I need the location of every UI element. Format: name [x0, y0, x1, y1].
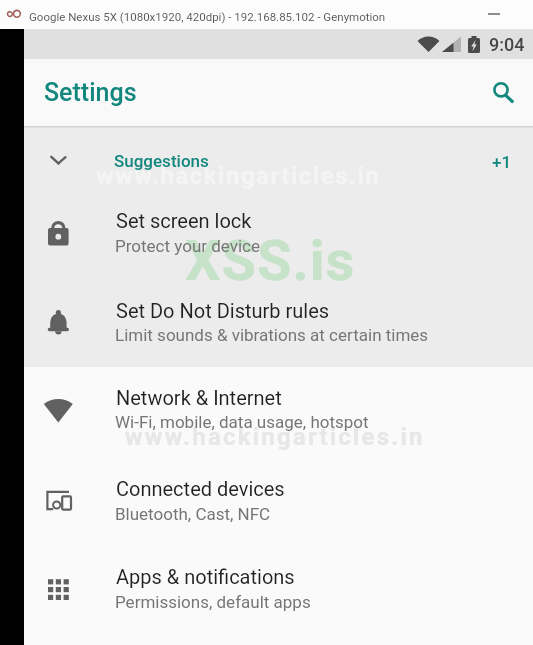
staticText: Limit sounds & vibrations at certain tim…	[115, 325, 429, 345]
staticText: www.hackingarticles.in	[96, 162, 381, 190]
staticText: Bluetooth, Cast, NFC	[115, 504, 271, 524]
staticText: Suggestions	[114, 151, 209, 171]
staticText: Settings	[44, 78, 137, 107]
button[interactable]	[24, 552, 533, 632]
staticText: Connected devices	[116, 477, 285, 500]
button[interactable]	[24, 128, 533, 183]
staticText: www.hackingarticles.in	[125, 423, 425, 451]
staticText: Google Nexus 5X (1080x1920, 420dpi) - 19…	[29, 10, 386, 23]
staticText: Permissions, default apps	[115, 592, 311, 612]
button[interactable]	[482, 72, 522, 110]
staticText: XSS.is	[185, 228, 356, 294]
staticText: Protect your device	[115, 236, 261, 256]
staticText: +1	[492, 152, 512, 172]
staticText: 9:04	[489, 34, 525, 55]
staticText: Apps & notifications	[116, 565, 295, 588]
button[interactable]	[24, 282, 533, 362]
button[interactable]	[24, 462, 533, 550]
staticText: Network & Internet	[116, 386, 282, 409]
staticText: Set Do Not Disturb rules	[116, 299, 330, 322]
button[interactable]	[470, 0, 510, 28]
staticText: Wi-Fi, mobile, data usage, hotspot	[115, 412, 369, 432]
staticText: Set screen lock	[116, 209, 252, 232]
button[interactable]	[24, 192, 533, 274]
button[interactable]	[24, 370, 533, 458]
